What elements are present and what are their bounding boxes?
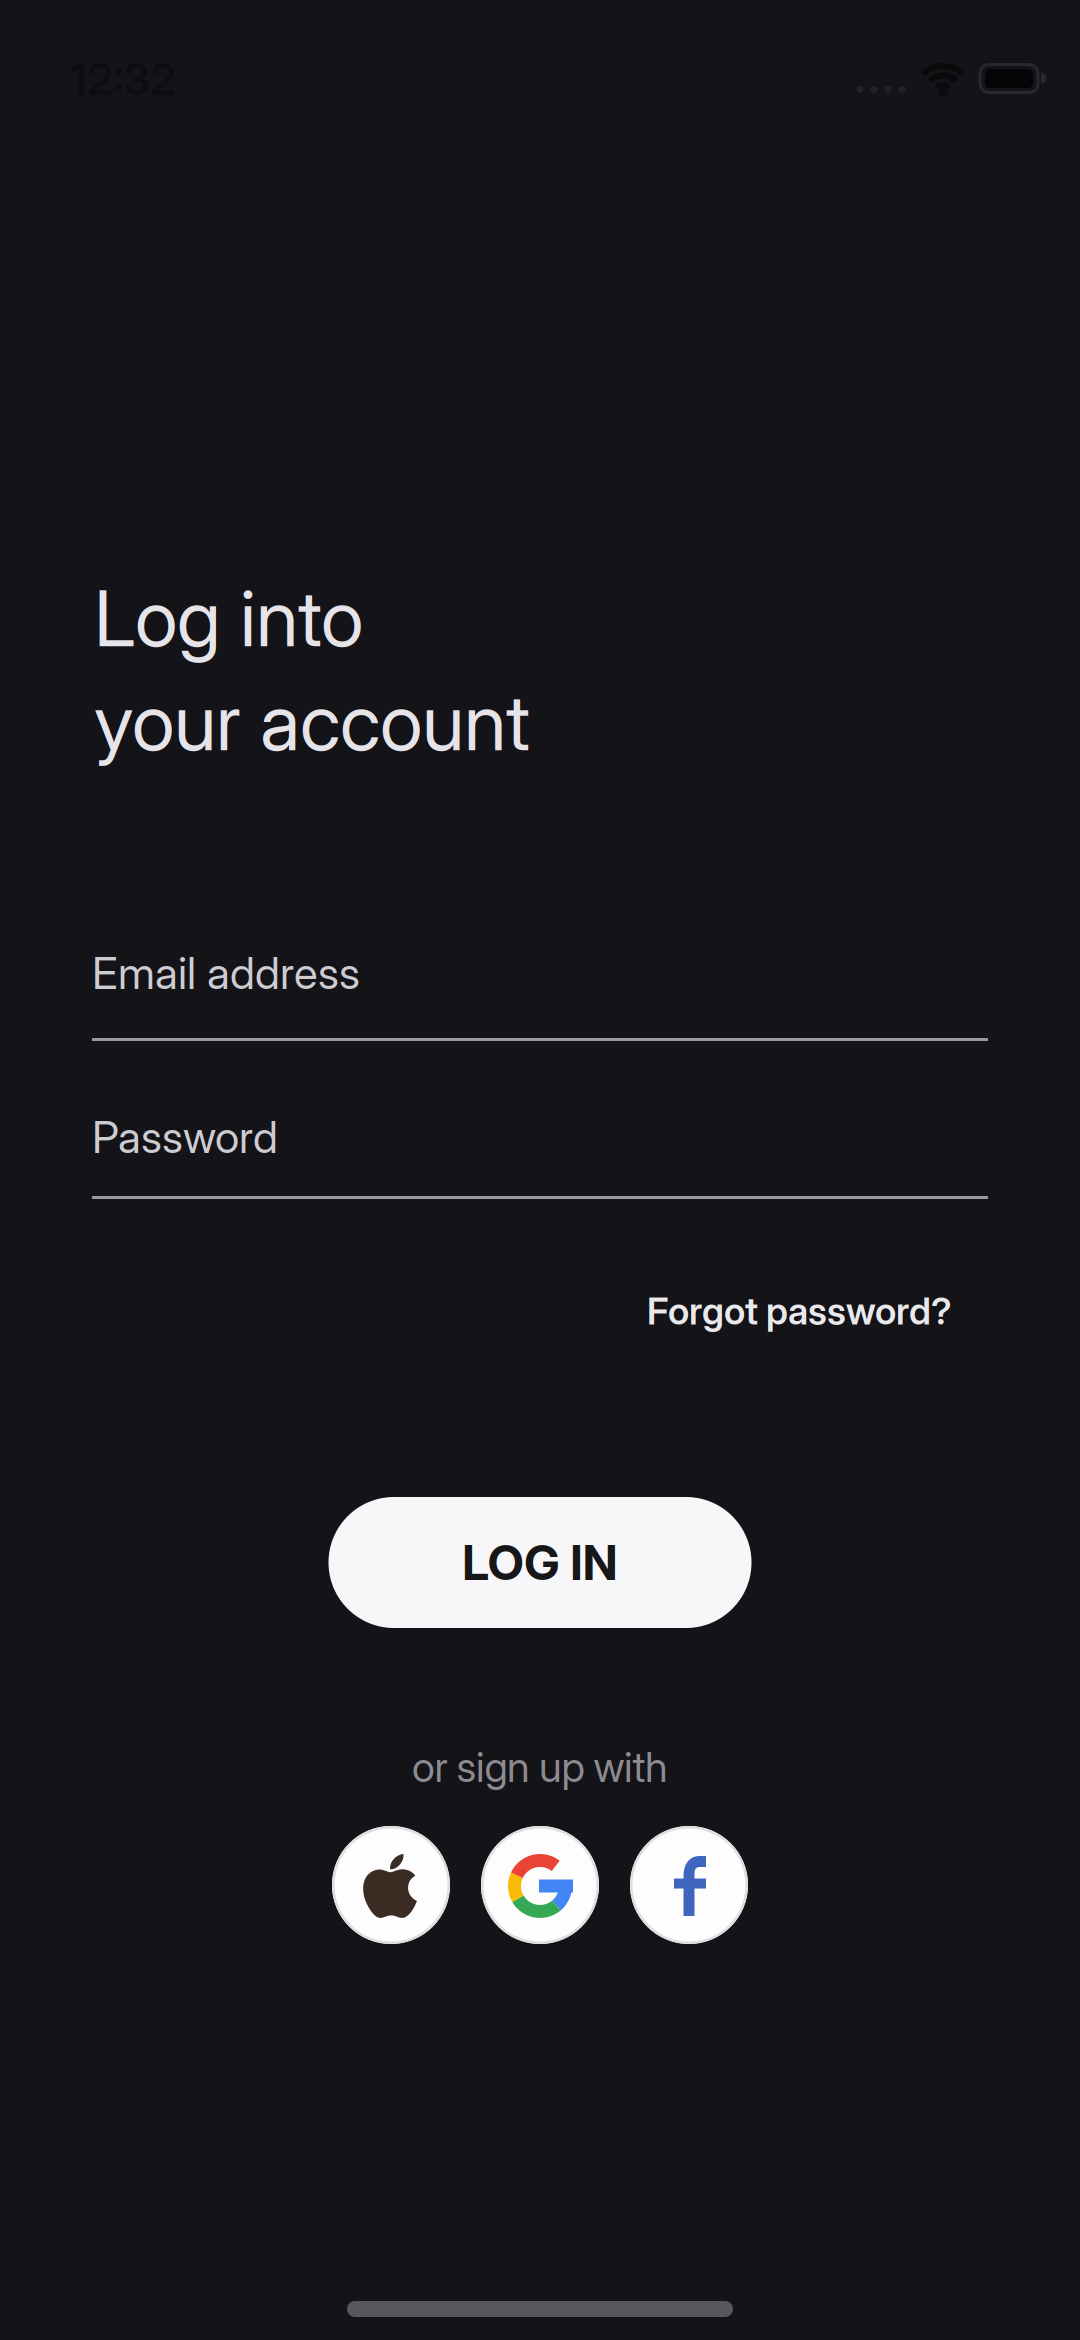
staticText: Forgot password?	[647, 1288, 952, 1334]
staticText: Password	[92, 1110, 278, 1164]
staticText: Log into	[94, 571, 363, 665]
staticText: Email address	[92, 946, 360, 1000]
staticText: your account	[94, 675, 530, 769]
staticText: 12:32	[70, 52, 176, 106]
staticText: or sign up with	[412, 1742, 668, 1792]
staticText: LOG IN	[462, 1533, 618, 1592]
